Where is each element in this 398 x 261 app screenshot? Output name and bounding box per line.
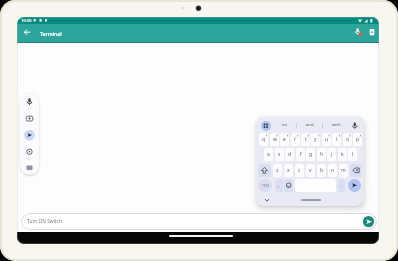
button[interactable]: a: [264, 148, 273, 161]
button[interactable]: s: [275, 148, 284, 161]
button[interactable]: d: [285, 148, 294, 161]
staticText: and: [306, 122, 314, 128]
button[interactable]: ?123: [258, 179, 272, 192]
staticText: ,: [278, 182, 280, 189]
button[interactable]: [20, 93, 39, 175]
staticText: Terminal: [40, 30, 62, 37]
staticText: z: [276, 167, 279, 174]
button[interactable]: j: [327, 148, 336, 161]
staticText: p: [356, 136, 360, 143]
button[interactable]: i: [332, 133, 341, 146]
staticText: u: [325, 136, 329, 143]
button[interactable]: k: [338, 148, 347, 161]
button[interactable]: [261, 121, 271, 131]
button[interactable]: f: [296, 148, 305, 161]
button[interactable]: [348, 179, 361, 192]
staticText: d: [288, 151, 292, 158]
button[interactable]: v: [306, 164, 315, 177]
staticText: t: [305, 136, 307, 143]
button[interactable]: p: [353, 133, 362, 146]
button[interactable]: [258, 164, 271, 177]
button[interactable]: w: [270, 133, 279, 146]
staticText: a: [267, 151, 270, 158]
staticText: g: [309, 151, 313, 158]
button[interactable]: [284, 179, 293, 192]
button[interactable]: e: [280, 133, 289, 146]
button[interactable]: m: [339, 164, 348, 177]
staticText: q: [262, 136, 266, 143]
staticText: s: [278, 151, 281, 158]
staticText: o: [346, 136, 350, 143]
button[interactable]: [363, 216, 374, 227]
staticText: .: [341, 182, 343, 189]
staticText: h: [320, 151, 324, 158]
button[interactable]: c: [295, 164, 304, 177]
staticText: m: [341, 167, 346, 174]
button[interactable]: [22, 27, 32, 37]
button[interactable]: y: [311, 133, 320, 146]
button[interactable]: x: [284, 164, 293, 177]
button[interactable]: [353, 27, 363, 37]
staticText: l: [352, 151, 354, 158]
button[interactable]: r: [291, 133, 300, 146]
button[interactable]: q: [259, 133, 268, 146]
staticText: e: [283, 136, 286, 143]
staticText: b: [320, 167, 324, 174]
staticText: x: [287, 167, 290, 174]
staticText: on: [282, 122, 288, 128]
staticText: w: [273, 136, 277, 143]
staticText: j: [331, 151, 333, 158]
button[interactable]: l: [348, 148, 357, 161]
staticText: f: [300, 151, 302, 158]
staticText: i: [336, 136, 338, 143]
staticText: 10:05: [21, 18, 32, 24]
button[interactable]: h: [317, 148, 326, 161]
button[interactable]: o: [343, 133, 352, 146]
staticText: Turn ON Switch: [27, 218, 62, 225]
button[interactable]: Turn ON Switch: [21, 213, 377, 230]
staticText: n: [331, 167, 335, 174]
button[interactable]: g: [306, 148, 315, 161]
staticText: y: [314, 136, 317, 143]
staticText: ?123: [262, 184, 269, 188]
staticText: v: [309, 167, 312, 174]
staticText: c: [298, 167, 301, 174]
button[interactable]: u: [322, 133, 331, 146]
button[interactable]: .: [338, 179, 345, 192]
button[interactable]: [350, 164, 362, 177]
button[interactable]: [367, 27, 377, 37]
staticText: with: [332, 122, 341, 128]
button[interactable]: t: [301, 133, 310, 146]
button[interactable]: z: [273, 164, 282, 177]
button[interactable]: ,: [275, 179, 283, 192]
staticText: k: [341, 151, 344, 158]
button[interactable]: n: [328, 164, 337, 177]
staticText: r: [294, 136, 297, 143]
button[interactable]: b: [317, 164, 326, 177]
